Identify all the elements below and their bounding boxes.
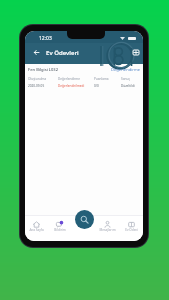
staticText: Düzeltildi (121, 84, 141, 88)
staticText: 0/0 (94, 84, 121, 88)
button[interactable]: Ev Ödevi (119, 215, 143, 241)
button[interactable]: Mesajlarım (95, 215, 119, 241)
staticText: Sonuç (121, 77, 141, 81)
staticText: Bildirim (54, 228, 66, 232)
staticText: Oluşturulma (28, 77, 58, 81)
staticText: Fen Bilgisi L032 (28, 67, 59, 73)
staticText: Mesajlarım (99, 228, 116, 232)
button[interactable]: Back (31, 47, 42, 58)
button[interactable]: Ana Sayfa (25, 215, 48, 241)
staticText: Ev Ödevi (125, 228, 138, 232)
staticText: 12:03 (39, 35, 52, 42)
staticText: Değerlendirme (58, 77, 94, 81)
staticText: Ev Ödevleri (46, 48, 79, 56)
staticText: Değerlendirilmedi (58, 84, 94, 88)
button[interactable]: Grid view (130, 47, 141, 58)
button[interactable]: Bildirim (48, 215, 71, 241)
button[interactable]: Değerlendirme (111, 67, 141, 73)
staticText: Puanlama (94, 77, 121, 81)
staticText: Değerlendirme (111, 67, 141, 73)
button[interactable]: Scan QR (75, 210, 94, 229)
staticText: Ana Sayfa (29, 228, 44, 232)
staticText: 2020-09-05 (28, 84, 58, 88)
